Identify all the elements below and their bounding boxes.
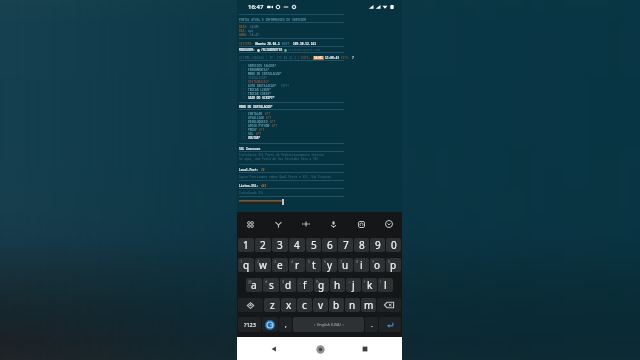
- staticText: [6]: [241, 132, 247, 136]
- button[interactable]: Enter: [379, 317, 401, 332]
- staticText: j: [352, 278, 355, 292]
- staticText: HOST:: [282, 42, 293, 46]
- button[interactable]: 6: [322, 238, 337, 252]
- button[interactable]: n: [345, 298, 360, 312]
- staticText: 7: [340, 259, 343, 264]
- button[interactable]: [4]: [241, 76, 400, 80]
- button[interactable]: 7: [338, 238, 353, 252]
- button[interactable]: Emoji: [262, 317, 278, 332]
- button[interactable]: Back: [266, 341, 282, 357]
- button[interactable]: 0: [386, 258, 401, 272]
- staticText: 5: [311, 238, 317, 252]
- staticText: Listen-SSL:: [239, 184, 261, 188]
- button[interactable]: 4: [289, 238, 305, 252]
- staticText: VOLTAR*: [248, 136, 261, 140]
- button[interactable]: Collapse: [381, 216, 397, 232]
- staticText: 8: [356, 259, 359, 264]
- button[interactable]: 4: [289, 258, 305, 272]
- button[interactable]: Text editing: [298, 216, 314, 232]
- button[interactable]: @: [246, 278, 262, 292]
- button[interactable]: c: [297, 298, 312, 312]
- button[interactable]: x: [281, 298, 296, 312]
- button[interactable]: Backspace: [377, 298, 401, 312]
- staticText: q: [243, 258, 250, 272]
- staticText: u: [342, 258, 349, 272]
- staticText: ?123: [244, 321, 256, 328]
- button[interactable]: [2]: [241, 68, 400, 72]
- button[interactable]: Settings: [353, 216, 369, 232]
- button[interactable]: [8]: [241, 92, 400, 96]
- button[interactable]: [3]: [241, 120, 400, 124]
- button[interactable]: #: [263, 278, 279, 292]
- staticText: 2: [257, 259, 260, 264]
- button[interactable]: 0: [386, 238, 401, 252]
- button[interactable]: 8: [354, 238, 369, 252]
- staticText: m: [364, 298, 374, 312]
- staticText: [5]: [241, 128, 247, 132]
- button[interactable]: Stickers: [270, 216, 286, 232]
- button[interactable]: 3: [272, 258, 288, 272]
- button[interactable]: 9: [370, 258, 385, 272]
- button[interactable]: 5: [306, 238, 321, 252]
- button[interactable]: 7: [338, 258, 353, 272]
- button[interactable]: 8: [354, 258, 369, 272]
- button[interactable]: ,: [279, 317, 292, 332]
- button[interactable]: [7]: [241, 88, 400, 92]
- button[interactable]: v: [313, 298, 328, 312]
- staticText: 1: [240, 259, 243, 264]
- button[interactable]: _: [297, 278, 313, 292]
- button[interactable]: m: [361, 298, 376, 312]
- button[interactable]: [1]: [241, 112, 400, 116]
- staticText: LFT: [264, 116, 272, 120]
- button[interactable]: Voice input: [325, 216, 341, 232]
- button[interactable]: [6]: [241, 84, 400, 88]
- button[interactable]: 2: [255, 238, 271, 252]
- staticText: 0: [391, 238, 397, 252]
- button[interactable]: +: [346, 278, 361, 292]
- button[interactable]: [5]: [241, 128, 400, 132]
- button[interactable]: [5]: [241, 80, 400, 84]
- staticText: b: [333, 298, 340, 312]
- staticText: MENSAGEM:: [239, 48, 257, 52]
- button[interactable]: 5: [306, 258, 321, 272]
- button[interactable]: Home: [312, 341, 328, 357]
- button[interactable]: [239, 200, 282, 204]
- button[interactable]: Shift: [238, 298, 263, 312]
- button[interactable]: &: [314, 278, 329, 292]
- button[interactable]: [6]: [241, 132, 400, 136]
- button[interactable]: b: [329, 298, 344, 312]
- button[interactable]: z: [264, 298, 280, 312]
- staticText: ATUALIZAR: [248, 116, 264, 120]
- button[interactable]: [0]: [241, 136, 400, 140]
- staticText: y: [327, 258, 333, 272]
- staticText: HORA:: [239, 33, 250, 37]
- button[interactable]: 6: [322, 258, 337, 272]
- button[interactable]: ): [378, 278, 393, 292]
- button[interactable]: $: [280, 278, 296, 292]
- button[interactable]: [9]: [241, 96, 400, 100]
- button[interactable]: -: [330, 278, 345, 292]
- button[interactable]: 2: [255, 258, 271, 272]
- button[interactable]: ‹ English (USA) ›: [293, 317, 364, 332]
- button[interactable]: [2]: [241, 116, 400, 120]
- staticText: DESBLOQUEIO: [248, 120, 268, 124]
- staticText: d: [285, 278, 292, 292]
- button[interactable]: 1: [238, 258, 254, 272]
- button[interactable]: [3]: [241, 72, 400, 76]
- staticText: [6]: [241, 84, 247, 88]
- staticText: LFT: [257, 128, 265, 132]
- button[interactable]: 1: [238, 238, 254, 252]
- staticText: SISTEMA:: [239, 42, 255, 46]
- button[interactable]: 3: [272, 238, 288, 252]
- button[interactable]: 9: [370, 238, 385, 252]
- button[interactable]: ?123: [238, 317, 261, 332]
- button[interactable]: Recent apps: [357, 341, 373, 357]
- button[interactable]: .: [365, 317, 378, 332]
- staticText: c: [302, 298, 307, 312]
- button[interactable]: Clipboard: [242, 216, 258, 232]
- button[interactable]: (: [362, 278, 377, 292]
- staticText: 443: [261, 184, 267, 188]
- staticText: e: [277, 258, 283, 272]
- button[interactable]: [1]: [241, 64, 400, 68]
- button[interactable]: [4]: [241, 124, 400, 128]
